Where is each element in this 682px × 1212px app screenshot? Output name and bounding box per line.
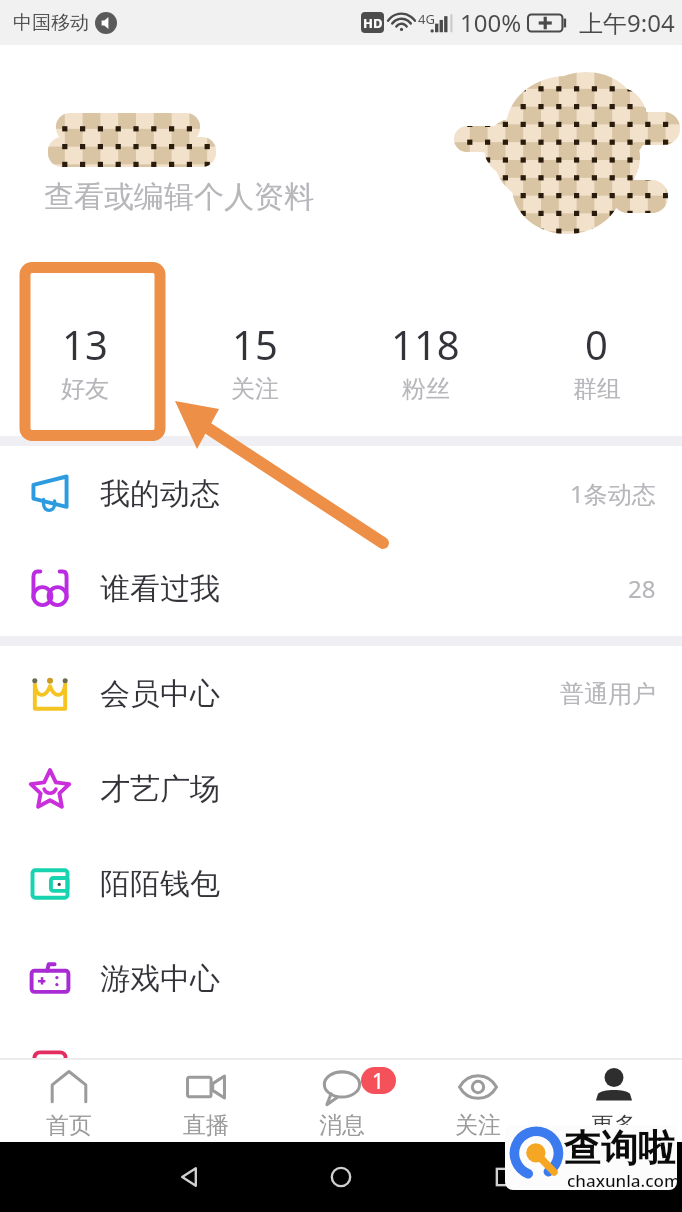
staticText: chaxunla.com <box>567 1169 677 1190</box>
staticText: 100% <box>460 6 522 39</box>
staticText: 查看或编辑个人资料 <box>44 178 314 216</box>
other: Recents <box>488 1160 522 1194</box>
button[interactable]: 才艺广场 <box>0 741 682 836</box>
staticText: 群组 <box>573 374 621 404</box>
button[interactable]: 13 <box>0 255 170 436</box>
staticText: 15 <box>232 317 278 371</box>
staticText: 13 <box>62 317 108 371</box>
staticText: 直播 <box>183 1111 229 1140</box>
staticText: 更多 <box>591 1111 637 1140</box>
staticText: 游戏中心 <box>100 960 220 998</box>
button[interactable]: Home <box>0 1060 137 1142</box>
staticText: 谁看过我 <box>100 570 220 608</box>
button[interactable]: 我的动态 <box>0 446 682 541</box>
staticText: 会员中心 <box>100 675 220 713</box>
button[interactable]: 15 <box>170 255 340 436</box>
button[interactable]: Following <box>410 1060 546 1142</box>
staticText: 查询啦 <box>564 1125 675 1172</box>
staticText: 关注 <box>455 1111 501 1140</box>
button[interactable]: Messages <box>274 1060 410 1142</box>
staticText: 0 <box>585 317 608 371</box>
button[interactable]: 谁看过我 <box>0 541 682 636</box>
staticText: 好友 <box>61 374 109 404</box>
staticText: 才艺广场 <box>100 770 220 808</box>
other: Home <box>324 1160 358 1194</box>
staticText: 4G <box>418 10 435 28</box>
staticText: 28 <box>628 572 656 605</box>
button[interactable]: 陌陌钱包 <box>0 836 682 931</box>
staticText: 首页 <box>46 1111 92 1140</box>
button[interactable]: 游戏中心 <box>0 931 682 1026</box>
button[interactable]: More <box>546 1060 682 1142</box>
staticText: 关注 <box>231 374 279 404</box>
staticText: 陌陌钱包 <box>100 865 220 903</box>
button[interactable]: 附近的人 <box>0 1026 682 1058</box>
staticText: 消息 <box>319 1111 365 1140</box>
staticText: 118 <box>391 317 460 371</box>
staticText: 1 <box>372 1067 385 1094</box>
button[interactable]: 0 <box>511 255 682 436</box>
button[interactable]: 118 <box>340 255 511 436</box>
staticText: 中国移动 <box>13 11 89 35</box>
staticText: 上午9:04 <box>579 6 675 39</box>
button[interactable]: 会员中心 <box>0 646 682 741</box>
staticText: 粉丝 <box>402 374 450 404</box>
button[interactable]: Live <box>137 1060 274 1142</box>
staticText: HD <box>363 14 383 32</box>
staticText: 1条动态 <box>570 477 656 510</box>
button[interactable]: 查看或编辑个人资料 <box>0 45 682 255</box>
staticText: 我的动态 <box>100 475 220 513</box>
staticText: 普通用户 <box>560 679 656 709</box>
other: Back <box>172 1160 206 1194</box>
